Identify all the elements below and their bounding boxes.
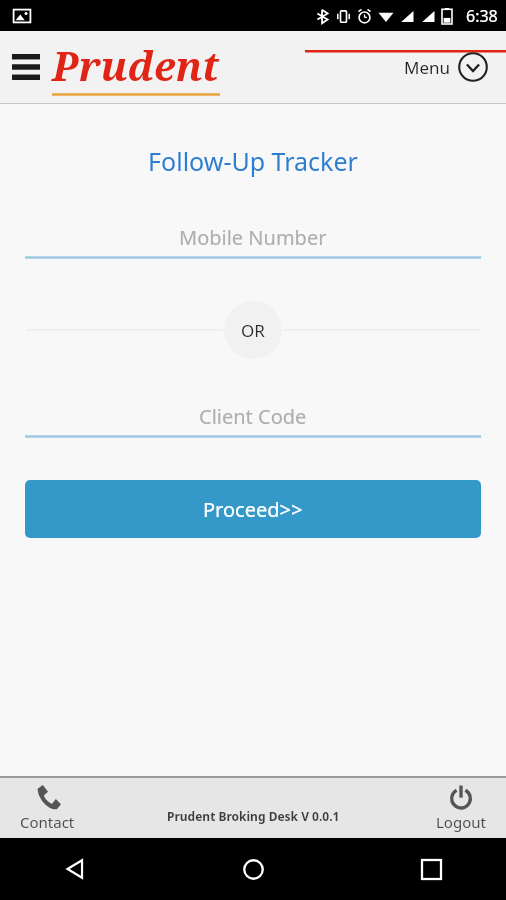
staticText: Contact (20, 812, 75, 832)
button[interactable]: Proceed>> (25, 480, 481, 538)
staticText: Prudent Broking Desk V 0.0.1 (167, 808, 340, 824)
button[interactable]: Open navigation menu (6, 47, 46, 87)
button[interactable]: Home (230, 846, 276, 892)
button[interactable]: Back (52, 846, 98, 892)
button[interactable]: Prudent (52, 38, 506, 96)
button[interactable]: Mobile Number (25, 218, 481, 259)
staticText: Menu (404, 56, 451, 79)
button[interactable]: Contact (14, 784, 81, 832)
staticText: Follow-Up Tracker (0, 144, 506, 178)
staticText: OR (241, 319, 265, 342)
button[interactable]: Menu (400, 46, 492, 88)
button[interactable]: Recent apps (408, 846, 454, 892)
staticText: 6:38 (466, 5, 498, 27)
staticText: Mobile Number (179, 224, 327, 251)
staticText: Proceed>> (203, 496, 303, 523)
staticText: Prudent (52, 38, 220, 92)
staticText: Logout (436, 812, 486, 832)
button[interactable]: Logout (430, 784, 492, 832)
button[interactable]: Client Code (25, 397, 481, 438)
staticText: Client Code (199, 403, 307, 430)
